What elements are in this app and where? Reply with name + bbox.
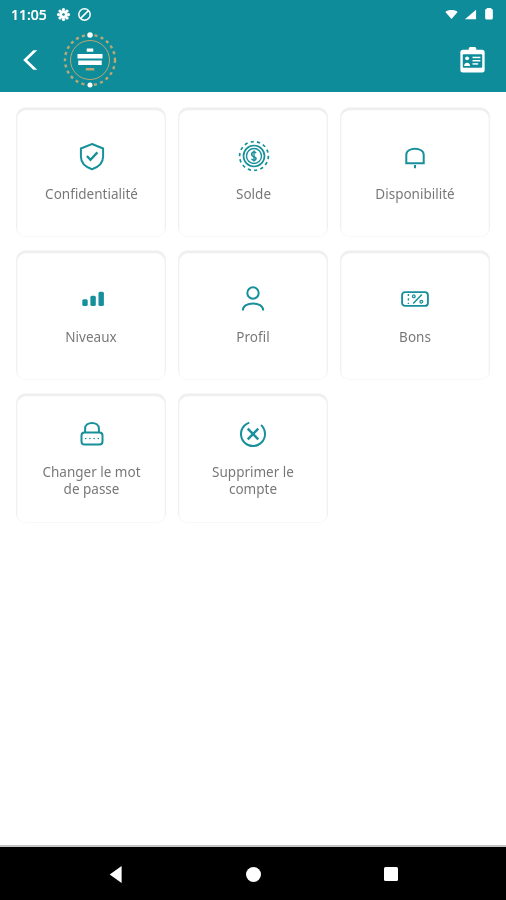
button[interactable]: Bons bbox=[340, 250, 490, 380]
button[interactable]: Confidentialité bbox=[16, 107, 166, 237]
staticText: Niveaux bbox=[65, 328, 117, 346]
button[interactable]: Back bbox=[94, 852, 138, 896]
staticText: Changer le mot de passe bbox=[42, 463, 141, 498]
button[interactable]: Membership card bbox=[450, 38, 494, 82]
staticText: Bons bbox=[399, 328, 431, 346]
button[interactable]: Disponibilité bbox=[340, 107, 490, 237]
button[interactable]: Profil bbox=[178, 250, 328, 380]
button[interactable]: Recent apps bbox=[369, 852, 413, 896]
staticText: Profil bbox=[236, 328, 270, 346]
staticText: Disponibilité bbox=[375, 185, 455, 203]
staticText: 11:05 bbox=[11, 5, 47, 24]
button[interactable]: Supprimer le compte bbox=[178, 393, 328, 523]
staticText: Confidentialité bbox=[45, 185, 138, 203]
button[interactable]: Changer le mot de passe bbox=[16, 393, 166, 523]
staticText: Supprimer le compte bbox=[212, 463, 294, 498]
button[interactable]: Niveaux bbox=[16, 250, 166, 380]
staticText: Solde bbox=[236, 185, 271, 203]
button[interactable]: Home bbox=[231, 852, 275, 896]
button[interactable]: Back bbox=[10, 38, 54, 82]
button[interactable]: Solde bbox=[178, 107, 328, 237]
